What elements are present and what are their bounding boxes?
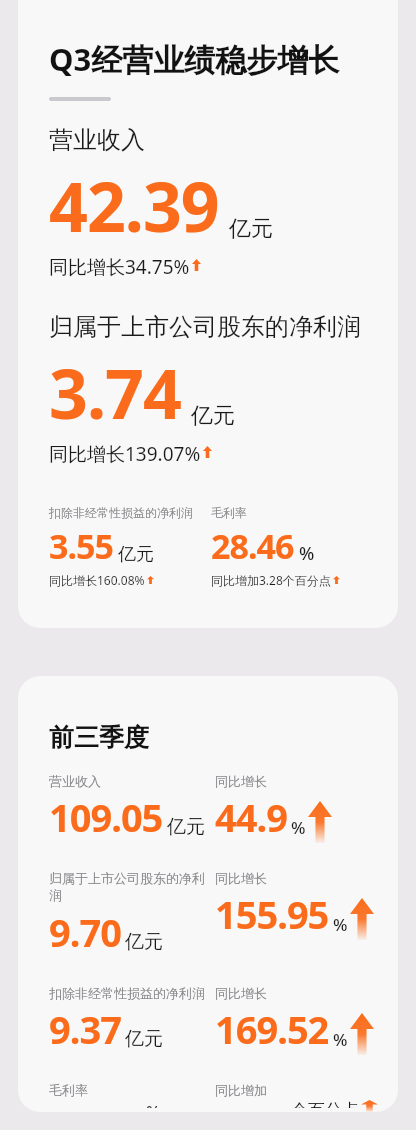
staticText: 营业收入 — [49, 125, 145, 155]
other: Increase — [192, 259, 201, 271]
staticText: 同比增长 — [215, 773, 267, 789]
staticText: 扣除非经常性损益的净利润 — [49, 505, 193, 520]
staticText: 同比增长34.75% — [49, 254, 190, 280]
other: Increase — [350, 898, 374, 940]
staticText: % — [291, 816, 306, 839]
staticText: % — [333, 1028, 348, 1051]
other: Increase — [203, 446, 212, 458]
other: Increase — [333, 576, 340, 584]
other: Increase — [350, 1013, 374, 1055]
staticText: 同比增长160.08% — [49, 572, 145, 588]
button[interactable]: 前三季度 — [18, 676, 398, 1112]
staticText: 亿元 — [229, 215, 273, 243]
staticText: 归属于上市公司股东的净利润 — [49, 312, 361, 342]
staticText: 亿元 — [125, 930, 163, 954]
staticText: 前三季度 — [49, 722, 149, 753]
staticText: 个百分点 — [291, 1100, 359, 1108]
staticText: 3.74 — [49, 346, 181, 439]
staticText: % — [146, 1100, 161, 1108]
other: Increase — [147, 576, 154, 584]
staticText: 同比增长 — [215, 985, 267, 1001]
staticText: 3.55 — [49, 523, 113, 569]
staticText: 扣除非经常性损益的净利润 — [49, 985, 205, 1001]
other: Increase — [308, 801, 332, 843]
staticText: 毛利率 — [49, 1082, 88, 1098]
staticText: 同比增加3.28个百分点 — [211, 572, 331, 588]
staticText: 同比增长 — [215, 870, 267, 886]
staticText: 营业收入 — [49, 773, 101, 789]
staticText: 109.05 — [49, 791, 163, 843]
staticText: 28.46 — [211, 523, 294, 569]
staticText: 亿元 — [191, 402, 235, 430]
staticText: 同比增长139.07% — [49, 441, 201, 467]
staticText: 42.39 — [49, 159, 219, 252]
other: Increase — [361, 1100, 378, 1112]
staticText: % — [299, 541, 315, 566]
staticText: 亿元 — [167, 815, 205, 839]
staticText: 亿元 — [118, 543, 154, 566]
staticText: 169.52 — [215, 1003, 329, 1055]
staticText: 155.95 — [215, 888, 329, 940]
staticText: 亿元 — [125, 1027, 163, 1051]
staticText: % — [333, 913, 348, 936]
button[interactable]: Q3经营业绩稳步增长 — [18, 0, 398, 628]
staticText: 44.9 — [215, 791, 287, 843]
staticText: Q3经营业绩稳步增长 — [49, 38, 340, 80]
staticText: 9.37 — [49, 1003, 121, 1055]
staticText: 同比增加 — [215, 1082, 267, 1098]
staticText: 毛利率 — [211, 505, 247, 520]
staticText: 归属于上市公司股东的净利润 — [49, 870, 215, 904]
staticText: 9.70 — [49, 906, 121, 958]
